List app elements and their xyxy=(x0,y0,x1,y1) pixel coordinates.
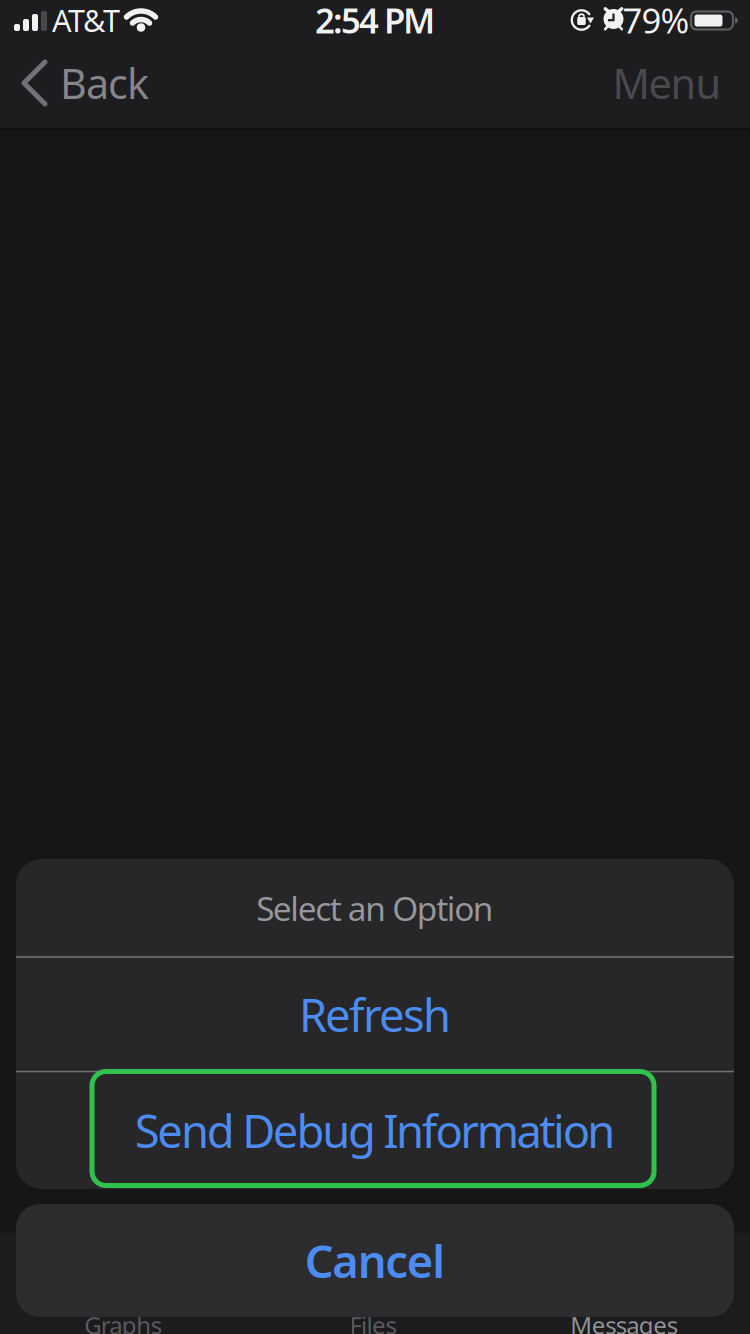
staticText: AT&T xyxy=(52,0,120,40)
button[interactable]: Cancel xyxy=(16,1204,734,1317)
staticText: 2:54 PM xyxy=(315,0,435,43)
button[interactable]: Graphs xyxy=(53,1310,193,1334)
button[interactable]: Send Debug Information xyxy=(16,1073,734,1188)
staticText: 79% xyxy=(622,0,689,43)
staticText: Cancel xyxy=(305,1230,445,1291)
button[interactable]: Messages xyxy=(544,1310,704,1334)
button[interactable]: Menu xyxy=(602,52,732,114)
staticText: Graphs xyxy=(84,1309,162,1334)
staticText: Back xyxy=(60,56,149,110)
button[interactable]: Files xyxy=(303,1310,443,1334)
staticText: Refresh xyxy=(299,984,451,1045)
button[interactable]: Back xyxy=(18,52,168,114)
staticText: Select an Option xyxy=(256,886,494,930)
button[interactable]: Refresh xyxy=(16,958,734,1070)
staticText: Files xyxy=(349,1309,396,1334)
staticText: Menu xyxy=(612,56,721,110)
staticText: Messages xyxy=(570,1309,678,1334)
staticText: Send Debug Information xyxy=(135,1100,615,1161)
